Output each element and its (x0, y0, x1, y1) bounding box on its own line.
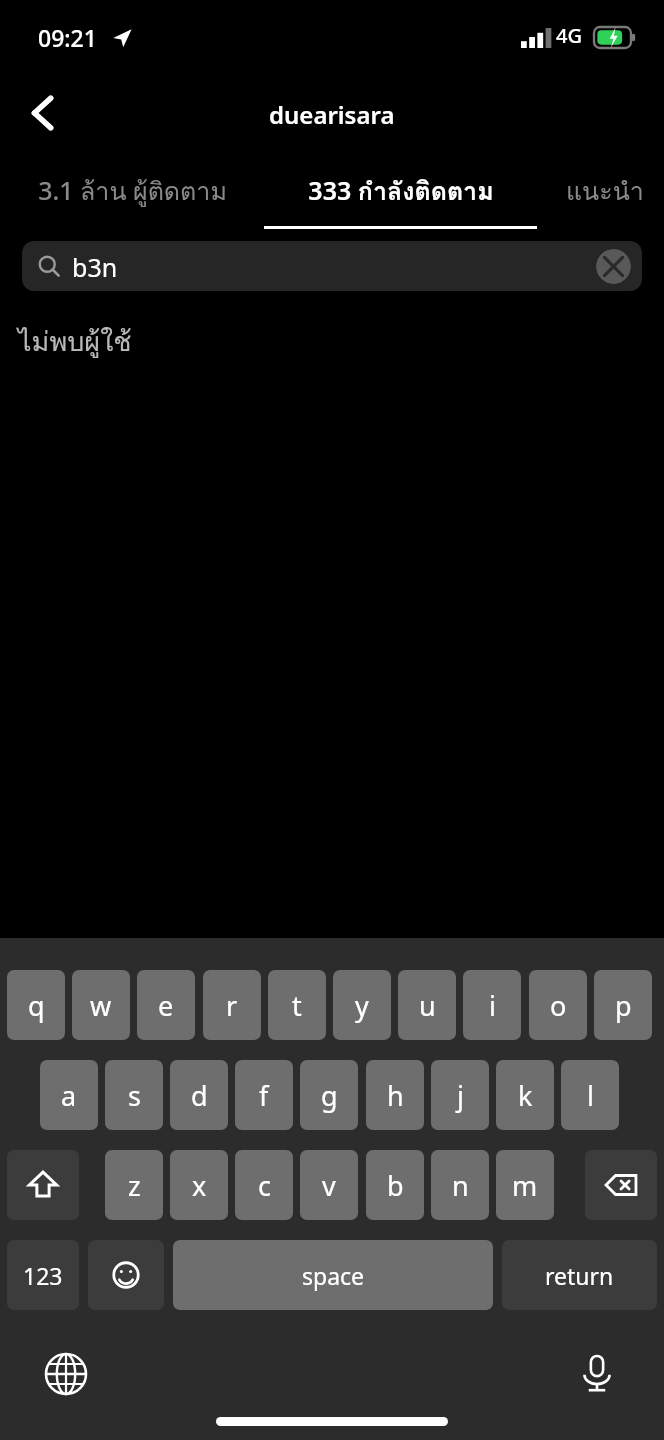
button[interactable]: v (300, 1150, 358, 1220)
button[interactable]: 3.1 ล้าน ผู้ติดตาม (6, 160, 258, 222)
staticText: space (302, 1260, 365, 1291)
staticText: s (128, 1077, 141, 1114)
staticText: c (258, 1167, 271, 1204)
button[interactable]: p (594, 970, 652, 1040)
staticText: v (322, 1167, 336, 1204)
button[interactable]: k (496, 1060, 554, 1130)
staticText: return (545, 1260, 614, 1291)
staticText: k (518, 1077, 533, 1114)
staticText: o (550, 987, 567, 1024)
button[interactable]: b (366, 1150, 424, 1220)
button[interactable]: y (333, 970, 391, 1040)
staticText: m (512, 1167, 538, 1204)
staticText: j (457, 1077, 464, 1114)
staticText: u (419, 987, 436, 1024)
button[interactable]: Shift (7, 1150, 79, 1220)
button[interactable]: Emoji (88, 1240, 164, 1310)
staticText: a (61, 1077, 77, 1114)
staticText: b (387, 1167, 404, 1204)
button[interactable]: w (72, 970, 130, 1040)
button[interactable]: b3n (22, 241, 642, 291)
staticText: แนะนำ (566, 171, 644, 211)
button[interactable]: x (170, 1150, 228, 1220)
button[interactable]: Voice input (569, 1346, 625, 1402)
button[interactable]: return (502, 1240, 657, 1310)
staticText: y (355, 987, 369, 1024)
button[interactable]: j (431, 1060, 489, 1130)
staticText: h (387, 1077, 404, 1114)
button[interactable]: i (463, 970, 521, 1040)
staticText: ไม่พบผู้ใช้ (18, 320, 132, 363)
staticText: p (615, 987, 632, 1024)
button[interactable]: o (529, 970, 587, 1040)
button[interactable]: h (366, 1060, 424, 1130)
button[interactable]: l (561, 1060, 619, 1130)
button[interactable]: s (105, 1060, 163, 1130)
button[interactable]: g (300, 1060, 358, 1130)
staticText: duearisara (269, 98, 395, 131)
button[interactable]: f (235, 1060, 293, 1130)
button[interactable]: แนะนำ (545, 160, 664, 222)
button[interactable]: t (268, 970, 326, 1040)
button[interactable]: Clear text (596, 249, 631, 284)
staticText: w (90, 987, 112, 1024)
staticText: e (158, 987, 174, 1024)
staticText: q (28, 987, 45, 1024)
staticText: z (128, 1167, 141, 1204)
button[interactable]: 123 (7, 1240, 79, 1310)
button[interactable]: space (173, 1240, 493, 1310)
staticText: t (292, 987, 302, 1024)
staticText: 333 กำลังติดตาม (308, 171, 494, 211)
staticText: d (191, 1077, 208, 1114)
button[interactable]: m (496, 1150, 554, 1220)
button[interactable]: Switch keyboard language (38, 1346, 94, 1402)
staticText: l (587, 1077, 594, 1114)
staticText: g (321, 1077, 338, 1114)
button[interactable]: a (40, 1060, 98, 1130)
staticText: 3.1 ล้าน ผู้ติดตาม (38, 171, 227, 211)
staticText: i (489, 987, 496, 1024)
button[interactable]: u (398, 970, 456, 1040)
staticText: 09:21 (38, 22, 97, 53)
button[interactable]: q (7, 970, 65, 1040)
staticText: n (452, 1167, 469, 1204)
button[interactable]: Backspace (585, 1150, 657, 1220)
button[interactable]: c (235, 1150, 293, 1220)
button[interactable]: d (170, 1060, 228, 1130)
button[interactable]: Back (8, 82, 70, 144)
button[interactable]: n (431, 1150, 489, 1220)
button[interactable]: e (137, 970, 195, 1040)
staticText: 123 (23, 1260, 63, 1291)
staticText: f (259, 1077, 269, 1114)
staticText: b3n (72, 250, 118, 284)
staticText: x (192, 1167, 207, 1204)
staticText: 4G (556, 22, 582, 49)
staticText: r (226, 987, 238, 1024)
button[interactable]: r (203, 970, 261, 1040)
button[interactable]: 333 กำลังติดตาม (264, 160, 537, 222)
button[interactable]: z (105, 1150, 163, 1220)
